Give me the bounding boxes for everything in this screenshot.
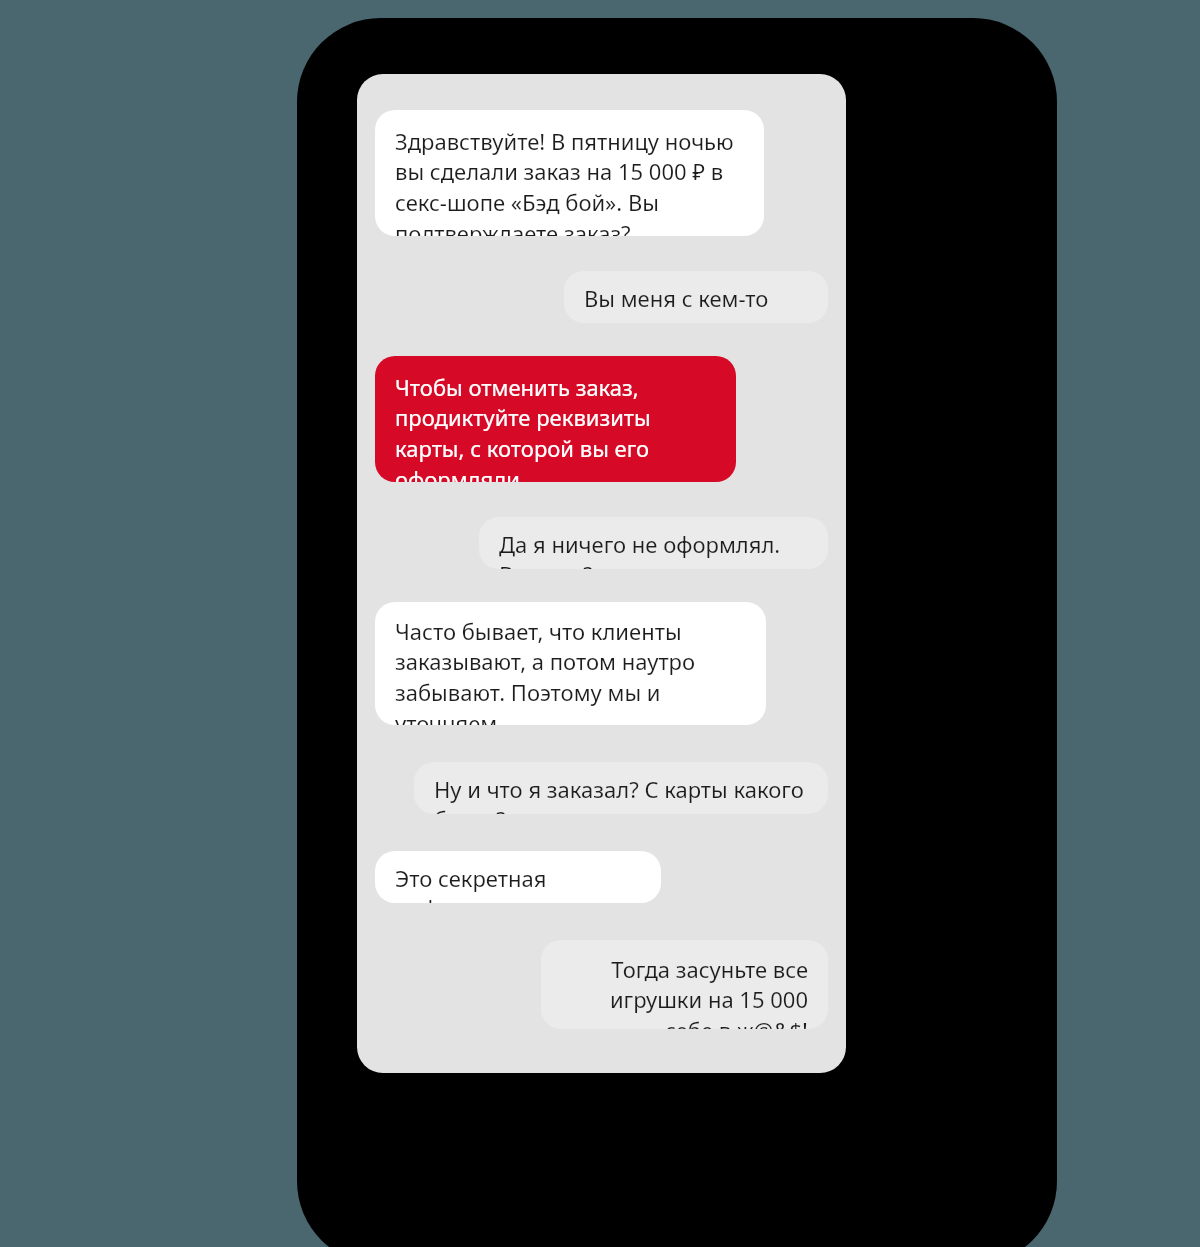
button[interactable]: Вы меня с кем-то путаете (564, 271, 828, 323)
other: Phone frame (297, 18, 1057, 1247)
button[interactable]: Ну и что я заказал? С карты какого банка… (414, 762, 828, 814)
staticText: Это секретная информация (395, 863, 641, 903)
staticText: Чтобы отменить заказ, продиктуйте реквиз… (395, 372, 716, 482)
staticText: Ну и что я заказал? С карты какого банка… (434, 774, 808, 814)
button[interactable]: Здравствуйте! В пятницу ночью вы сделали… (375, 110, 764, 236)
staticText: Тогда засуньте все игрушки на 15 000 себ… (561, 954, 808, 1029)
button[interactable]: Часто бывает, что клиенты заказывают, а … (375, 602, 766, 725)
staticText: Вы меня с кем-то путаете (584, 283, 808, 323)
button[interactable]: Тогда засуньте все игрушки на 15 000 себ… (541, 940, 828, 1029)
button[interactable]: Да я ничего не оформлял. Вы чего? (479, 517, 828, 569)
button[interactable]: Чтобы отменить заказ, продиктуйте реквиз… (375, 356, 736, 482)
button[interactable]: Это секретная информация (375, 851, 661, 903)
staticText: Здравствуйте! В пятницу ночью вы сделали… (395, 126, 744, 236)
staticText: Да я ничего не оформлял. Вы чего? (499, 529, 808, 569)
staticText: Часто бывает, что клиенты заказывают, а … (395, 616, 746, 725)
